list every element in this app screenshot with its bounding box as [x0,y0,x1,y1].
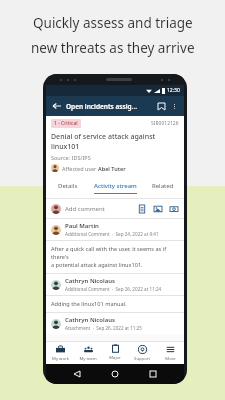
staticText: Major incidents [102,355,128,362]
staticText: SIR0012126 [151,120,179,127]
button[interactable]: Details [46,178,89,198]
staticText: More [165,356,176,362]
button[interactable]: Take photo [168,203,179,214]
staticText: Add comment [65,205,105,213]
staticText: Activity stream [94,182,137,190]
button[interactable]: Attach image [152,203,163,214]
button[interactable]: Back [50,99,64,113]
staticText: My team [79,356,97,362]
staticText: Denial of service attack against linux10… [51,132,179,151]
staticText: Affected user [62,165,98,172]
staticText: Adding the linux101 manual. [51,300,127,308]
staticText: Open incidents assig... [66,102,137,111]
staticText: Attachment · Sep 26, 2022 at 11:25 [65,325,142,331]
staticText: Details [58,182,78,190]
button[interactable]: Recents [146,367,160,381]
button[interactable]: My work [47,343,73,364]
staticText: My work [52,356,69,362]
button[interactable]: Related [141,178,184,198]
staticText: Abel Tuter [98,165,126,172]
button[interactable]: Bookmark [154,99,168,113]
button[interactable]: Attach document [136,203,147,214]
button[interactable]: Add comment [51,203,179,214]
button[interactable]: Back [70,367,84,381]
staticText: new threats as they arrive [31,39,195,57]
staticText: Additional Comment · Sep 26, 2022 at 11:… [65,286,162,292]
button[interactable]: Support [129,343,155,364]
staticText: Additional Comment · Sep 24, 2022 at 9:4… [65,231,159,237]
staticText: Paul Martin [65,222,99,230]
staticText: After a quick call with the user, it see… [51,245,179,269]
button[interactable]: My team [75,343,101,364]
button[interactable]: More options [168,100,180,112]
staticText: Cathryn Nicolaus [65,277,116,285]
button[interactable]: Activity stream [89,178,141,198]
staticText: Quickly assess and triage [33,14,193,32]
button[interactable]: More [157,343,183,364]
staticText: Cathryn Nicolaus [65,316,116,324]
staticText: 12:30 [167,87,180,94]
staticText: 1 - Critical [54,120,78,127]
staticText: Support [134,356,150,362]
staticText: Source: IDS/IPS [51,154,91,161]
button[interactable]: Major incidents [102,342,128,364]
staticText: Related [152,182,174,190]
button[interactable]: Home [108,367,122,381]
